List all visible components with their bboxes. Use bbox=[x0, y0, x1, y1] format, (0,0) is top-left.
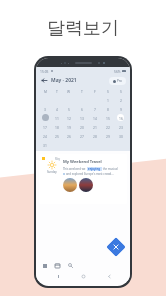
staticText: 18 bbox=[55, 125, 59, 129]
button[interactable]: 21 bbox=[88, 122, 101, 131]
staticText: W bbox=[67, 89, 71, 93]
staticText: and explored Europe's most crowd... bbox=[66, 172, 114, 176]
staticText: Pro bbox=[117, 79, 122, 83]
staticText: 6 bbox=[81, 107, 83, 111]
staticText: 11 bbox=[55, 116, 59, 120]
staticText: 31 bbox=[43, 143, 47, 147]
button[interactable]: Add event bbox=[106, 237, 126, 257]
button[interactable]: 4 bbox=[51, 104, 63, 113]
staticText: 24 bbox=[43, 134, 47, 138]
staticText: 7 bbox=[94, 107, 96, 111]
button[interactable]: List bbox=[40, 261, 49, 270]
button[interactable]: 8 bbox=[101, 104, 114, 113]
button[interactable]: 15 bbox=[101, 113, 114, 122]
staticText: T bbox=[56, 89, 58, 93]
button[interactable]: 14 bbox=[88, 113, 101, 122]
button[interactable]: 27 bbox=[75, 131, 88, 140]
staticText: 26 bbox=[67, 134, 71, 138]
button[interactable]: 26 bbox=[63, 131, 75, 140]
staticText: 19 bbox=[67, 125, 71, 129]
staticText: the musical bbox=[102, 167, 118, 171]
staticText: 29 bbox=[106, 134, 110, 138]
button[interactable]: 31 bbox=[39, 140, 51, 149]
staticText: 14 bbox=[93, 116, 97, 120]
button[interactable]: 6 bbox=[75, 104, 88, 113]
staticText: My Weekend Travel bbox=[63, 159, 102, 165]
staticText: This weekend we bbox=[63, 167, 87, 171]
button[interactable]: 25 bbox=[51, 131, 63, 140]
staticText: S bbox=[107, 89, 109, 93]
staticText: 22 bbox=[106, 125, 110, 129]
staticText: 20 bbox=[80, 125, 84, 129]
button[interactable]: 28 bbox=[88, 131, 101, 140]
button[interactable]: 19 bbox=[63, 122, 75, 131]
button[interactable]: Recents bbox=[54, 272, 62, 280]
staticText: 5 bbox=[68, 107, 70, 111]
button[interactable]: 20 bbox=[75, 122, 88, 131]
staticText: 달력보기 bbox=[47, 17, 119, 40]
staticText: 28 bbox=[93, 134, 97, 138]
button[interactable]: May bbox=[39, 154, 127, 204]
staticText: 13 bbox=[80, 116, 84, 120]
staticText: 3 bbox=[44, 107, 46, 111]
staticText: 56% bbox=[114, 69, 121, 73]
staticText: 9 bbox=[120, 107, 122, 111]
staticText: 27 bbox=[80, 134, 84, 138]
staticText: F bbox=[94, 89, 96, 93]
button[interactable] bbox=[39, 113, 51, 122]
staticText: 21 bbox=[93, 125, 97, 129]
staticText: 2 bbox=[120, 98, 122, 102]
button[interactable]: 9 bbox=[114, 104, 127, 113]
button[interactable]: 3 bbox=[39, 104, 51, 113]
staticText: 25 bbox=[55, 134, 59, 138]
staticText: 15:05 bbox=[40, 69, 49, 73]
staticText: T bbox=[81, 89, 83, 93]
button[interactable]: 22 bbox=[101, 122, 114, 131]
button[interactable]: 18 bbox=[51, 122, 63, 131]
button[interactable]: Calendar bbox=[53, 261, 62, 270]
staticText: Sunday bbox=[47, 170, 57, 174]
button[interactable]: 12 bbox=[63, 113, 75, 122]
button[interactable]: Back bbox=[40, 76, 49, 85]
button[interactable]: 16 bbox=[114, 113, 127, 122]
staticText: May bbox=[55, 157, 61, 161]
staticText: 17 bbox=[43, 125, 47, 129]
button[interactable]: Pro bbox=[109, 77, 126, 85]
button[interactable]: 24 bbox=[39, 131, 51, 140]
staticText: enjoying bbox=[88, 167, 101, 171]
staticText: 30 bbox=[119, 134, 123, 138]
staticText: 16 bbox=[119, 116, 123, 120]
button[interactable]: 1 bbox=[101, 95, 114, 104]
staticText: 8 bbox=[107, 107, 109, 111]
button[interactable]: Back bbox=[105, 272, 113, 280]
button[interactable]: 23 bbox=[114, 122, 127, 131]
button[interactable]: Search bbox=[66, 261, 75, 270]
button[interactable]: 29 bbox=[101, 131, 114, 140]
button[interactable]: 7 bbox=[88, 104, 101, 113]
button[interactable]: 17 bbox=[39, 122, 51, 131]
staticText: M bbox=[44, 89, 47, 93]
staticText: S bbox=[120, 89, 122, 93]
button[interactable]: 11 bbox=[51, 113, 63, 122]
button[interactable]: Home bbox=[79, 272, 87, 280]
staticText: 12 bbox=[67, 116, 71, 120]
button[interactable]: 13 bbox=[75, 113, 88, 122]
button[interactable]: 30 bbox=[114, 131, 127, 140]
button[interactable]: 2 bbox=[114, 95, 127, 104]
staticText: 1 bbox=[107, 98, 109, 102]
staticText: May · 2021 bbox=[51, 77, 77, 84]
button[interactable]: 5 bbox=[63, 104, 75, 113]
staticText: 4 bbox=[56, 107, 58, 111]
staticText: 23 bbox=[119, 125, 123, 129]
